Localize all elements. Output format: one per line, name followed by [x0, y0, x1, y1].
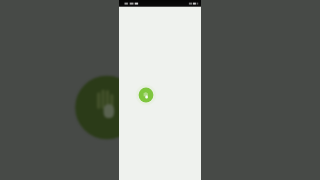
other: Status bar [119, 0, 201, 7]
button[interactable]: App logo [134, 83, 158, 107]
button[interactable]: Status bar [119, 0, 201, 180]
